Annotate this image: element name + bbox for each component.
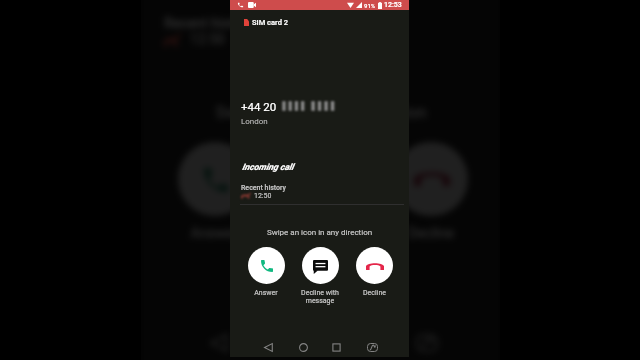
- button[interactable]: Decline call: [356, 247, 393, 284]
- staticText: Answer: [190, 226, 238, 242]
- staticText: Decline with message: [301, 289, 339, 305]
- button[interactable]: Screen capture: [404, 318, 448, 360]
- staticText: London: [241, 117, 268, 126]
- staticText: Decline: [363, 289, 386, 297]
- staticText: +44 20: [241, 100, 277, 113]
- staticText: Swipe an icon in any direction: [230, 228, 409, 237]
- staticText: Decline: [408, 226, 454, 242]
- staticText: Incoming call: [242, 162, 294, 172]
- button[interactable]: Decline with message: [302, 247, 339, 284]
- button[interactable]: Home: [292, 335, 314, 357]
- staticText: 91%: [364, 2, 376, 9]
- button[interactable]: Recent apps: [325, 335, 347, 357]
- button[interactable]: Answer call: [248, 247, 285, 284]
- staticText: Answer: [254, 289, 278, 297]
- button[interactable]: Recent apps: [332, 318, 376, 360]
- staticText: Decline with: [284, 226, 360, 242]
- staticText: 12:50: [190, 32, 226, 48]
- button[interactable]: Screen capture: [361, 335, 383, 357]
- staticText: 12:50: [254, 192, 272, 200]
- button[interactable]: Home: [266, 318, 310, 360]
- button[interactable]: Back: [257, 335, 279, 357]
- staticText: Recent history: [241, 184, 286, 192]
- button[interactable]: Back: [196, 318, 240, 360]
- staticText: SIM card 2: [252, 18, 289, 27]
- staticText: Recent history: [164, 16, 254, 32]
- staticText: Swipe an icon in any direction: [142, 104, 500, 122]
- staticText: 12:53: [384, 1, 402, 9]
